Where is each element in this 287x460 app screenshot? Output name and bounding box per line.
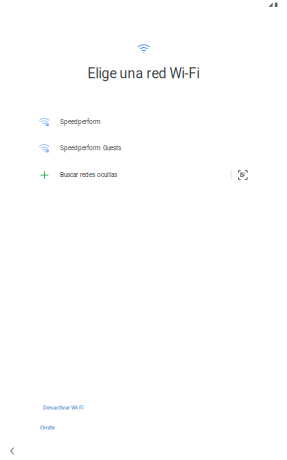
button[interactable]: Omitir [34,421,66,435]
button[interactable]: Buscar redes ocultas [0,162,287,188]
button[interactable]: Atrás [1,441,23,460]
staticText: Omitir [40,424,55,431]
staticText: Buscar redes ocultas [60,171,117,178]
button[interactable]: Desactivar Wi-Fi [37,401,97,415]
staticText: Speedperform Guests [60,144,121,152]
button[interactable]: Speedperform Guests [0,135,287,161]
staticText: Desactivar Wi-Fi [43,404,83,411]
button[interactable]: Speedperform [0,109,287,135]
staticText: Elige una red Wi-Fi [87,65,199,82]
staticText: Speedperform [60,118,101,125]
button[interactable]: Escanear código QR [231,164,255,186]
